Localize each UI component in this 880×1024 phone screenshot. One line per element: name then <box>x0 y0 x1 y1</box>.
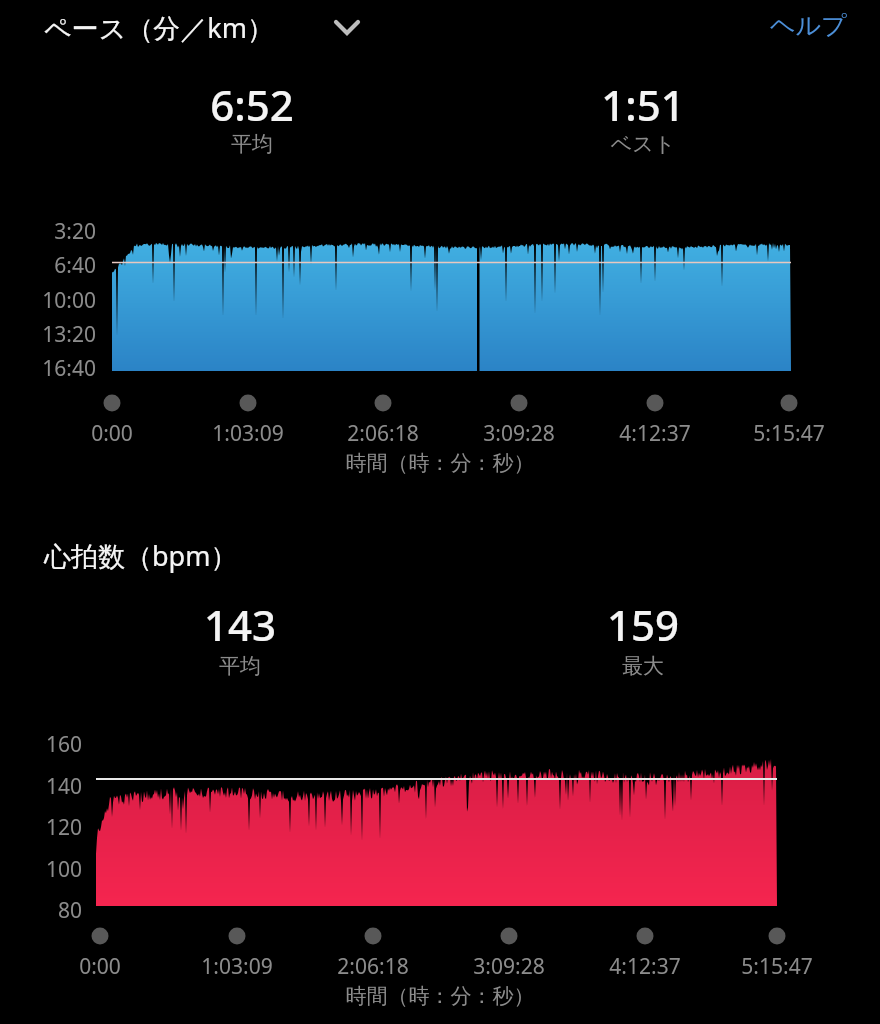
staticText: 時間（時：分：秒） <box>0 983 880 1009</box>
staticText: 2:06:18 <box>313 419 453 448</box>
staticText: 3:20 <box>0 217 96 246</box>
staticText: 160 <box>0 730 82 759</box>
staticText: 平均 <box>52 131 452 157</box>
staticText: 1:03:09 <box>178 419 318 448</box>
staticText: 平均 <box>40 653 440 679</box>
staticText: 80 <box>0 896 82 925</box>
staticText: 6:52 <box>52 76 452 133</box>
staticText: 10:00 <box>0 286 96 315</box>
button[interactable]: ペース（分／km）を変更 <box>44 4 374 50</box>
staticText: 時間（時：分：秒） <box>0 450 880 476</box>
staticText: 100 <box>0 855 82 884</box>
staticText: ペース（分／km） <box>44 9 344 46</box>
staticText: 3:09:28 <box>439 952 579 981</box>
staticText: 5:15:47 <box>719 419 859 448</box>
staticText: 6:40 <box>0 251 96 280</box>
staticText: 4:12:37 <box>585 419 725 448</box>
staticText: 2:06:18 <box>303 952 443 981</box>
staticText: 4:12:37 <box>575 952 715 981</box>
staticText: 1:03:09 <box>167 952 307 981</box>
staticText: 5:15:47 <box>707 952 847 981</box>
staticText: 1:51 <box>453 76 833 133</box>
staticText: 0:00 <box>30 952 170 981</box>
staticText: 最大 <box>443 653 843 679</box>
staticText: 140 <box>0 772 82 801</box>
staticText: ベスト <box>453 131 833 157</box>
staticText: 3:09:28 <box>449 419 589 448</box>
staticText: 120 <box>0 813 82 842</box>
staticText: ヘルプ <box>770 10 866 41</box>
staticText: 159 <box>443 596 843 653</box>
button[interactable]: ヘルプ <box>770 6 866 48</box>
staticText: 143 <box>40 596 440 653</box>
staticText: 16:40 <box>0 354 96 383</box>
staticText: 心拍数（bpm） <box>44 537 444 574</box>
staticText: 0:00 <box>42 419 182 448</box>
staticText: 13:20 <box>0 320 96 349</box>
